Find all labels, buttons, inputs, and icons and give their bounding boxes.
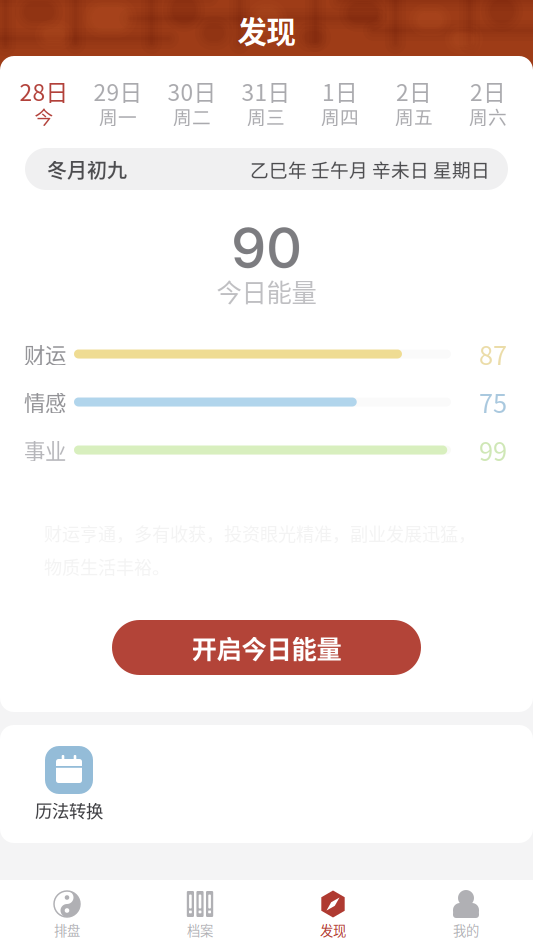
button[interactable]: 28日 xyxy=(7,79,81,127)
button[interactable]: 30日 xyxy=(155,79,229,127)
button[interactable]: 我的 xyxy=(399,880,532,948)
staticText: 31日 xyxy=(241,75,290,107)
staticText: 今日能量 xyxy=(216,273,316,309)
staticText: 28日 xyxy=(19,75,68,107)
staticText: 开启今日能量 xyxy=(191,629,341,666)
staticText: 1日 xyxy=(322,75,358,107)
staticText: 财运亨通，多有收获，投资眼光精准，副业发展迅猛，物质生活丰裕。 xyxy=(44,520,476,579)
staticText: 90 xyxy=(231,214,302,282)
staticText: 冬月初九 xyxy=(47,154,127,183)
staticText: 乙巳年 壬午月 辛未日 星期日 xyxy=(250,155,490,182)
staticText: 87 xyxy=(479,336,507,372)
staticText: 我的 xyxy=(453,920,479,940)
staticText: 财运 xyxy=(24,339,66,369)
button[interactable]: 2日 xyxy=(377,79,451,127)
staticText: 今 xyxy=(34,102,53,129)
button[interactable]: 31日 xyxy=(229,79,303,127)
button[interactable]: 排盘 xyxy=(0,880,133,948)
staticText: 情感 xyxy=(24,387,66,417)
button[interactable]: 开启今日能量 xyxy=(112,620,421,675)
staticText: 档案 xyxy=(187,920,213,940)
staticText: 周二 xyxy=(173,102,211,129)
button[interactable]: 历法转换 xyxy=(21,746,117,822)
staticText: 周一 xyxy=(99,102,137,129)
button[interactable]: 发现 xyxy=(266,880,399,948)
staticText: 历法转换 xyxy=(35,797,103,823)
staticText: 99 xyxy=(479,432,507,468)
staticText: 30日 xyxy=(167,75,216,107)
staticText: 周六 xyxy=(469,102,507,129)
button[interactable]: 29日 xyxy=(81,79,155,127)
button[interactable]: 1日 xyxy=(303,79,377,127)
staticText: 发现 xyxy=(320,920,346,940)
staticText: 周五 xyxy=(395,102,433,129)
staticText: 事业 xyxy=(24,435,66,465)
button[interactable]: 档案 xyxy=(133,880,266,948)
staticText: 排盘 xyxy=(54,920,80,940)
button[interactable]: 2日 xyxy=(451,79,525,127)
staticText: 周三 xyxy=(247,102,285,129)
staticText: 发现 xyxy=(237,9,295,51)
staticText: 2日 xyxy=(470,75,506,107)
staticText: 75 xyxy=(479,384,507,420)
staticText: 29日 xyxy=(93,75,142,107)
staticText: 2日 xyxy=(396,75,432,107)
staticText: 周四 xyxy=(321,102,359,129)
